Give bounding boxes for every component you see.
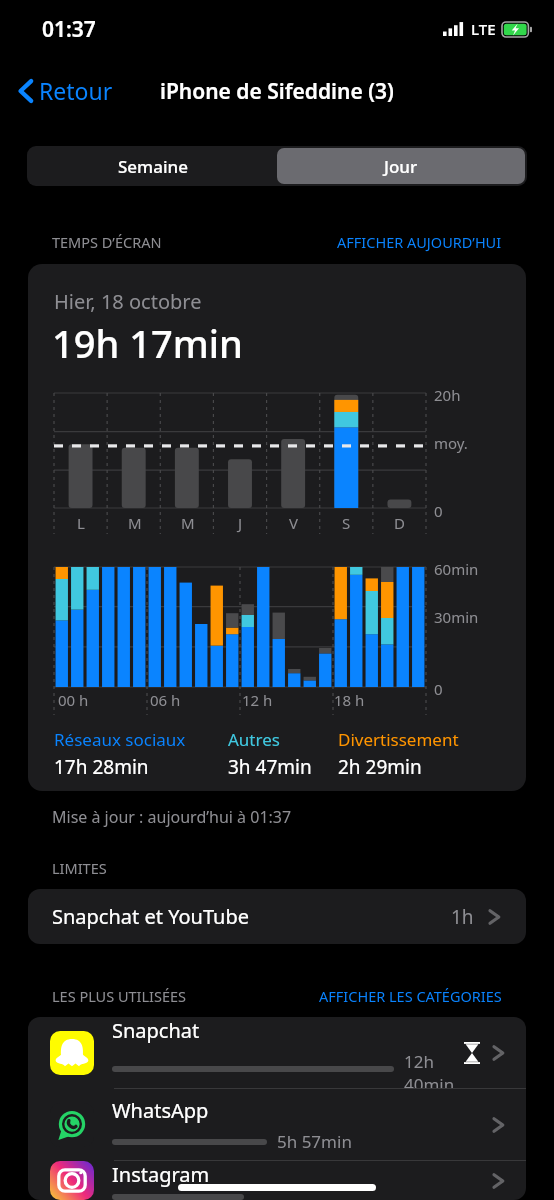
- staticText: 19h 17min: [52, 317, 243, 369]
- staticText: 06 h: [150, 690, 181, 710]
- staticText: Retour: [39, 75, 113, 106]
- staticText: Snapchat et YouTube: [52, 903, 249, 930]
- staticText: 5h 57min: [277, 1130, 352, 1153]
- staticText: 00 h: [58, 690, 89, 710]
- staticText: D: [394, 513, 405, 533]
- button[interactable]: Snapchat: [28, 1017, 526, 1088]
- staticText: 30min: [434, 607, 496, 627]
- staticText: moy.: [434, 433, 496, 453]
- staticText: M: [128, 513, 142, 533]
- button[interactable]: Jour: [277, 148, 525, 184]
- staticText: Instagram: [112, 1161, 210, 1188]
- staticText: 12 h: [242, 690, 273, 710]
- staticText: 17h 28min: [54, 754, 149, 780]
- button[interactable]: Divertissement: [338, 728, 506, 780]
- staticText: L: [77, 513, 85, 533]
- staticText: LIMITES: [52, 858, 107, 878]
- staticText: J: [238, 513, 243, 533]
- other: Limite atteinte: [464, 1042, 480, 1064]
- staticText: Divertissement: [338, 728, 459, 751]
- staticText: 1h: [451, 904, 474, 930]
- staticText: V: [289, 513, 299, 533]
- staticText: 12h 40min: [404, 1050, 464, 1088]
- staticText: S: [342, 513, 351, 533]
- staticText: 18 h: [334, 690, 365, 710]
- button[interactable]: Semaine: [29, 148, 277, 184]
- button[interactable]: Snapchat et YouTube: [28, 889, 526, 944]
- button[interactable]: Hier, 18 octobre: [28, 264, 526, 791]
- staticText: iPhone de Sifeddine (3): [160, 77, 394, 106]
- staticText: 60min: [434, 559, 496, 579]
- staticText: M: [181, 513, 195, 533]
- staticText: Hier, 18 octobre: [54, 288, 202, 315]
- staticText: LTE: [471, 19, 496, 39]
- button[interactable]: AFFICHER AUJOURD’HUI: [337, 232, 502, 252]
- staticText: Autres: [228, 728, 280, 751]
- staticText: 0: [434, 679, 496, 699]
- button[interactable]: Autres: [228, 728, 338, 780]
- staticText: Semaine: [118, 155, 188, 178]
- staticText: 0: [434, 501, 496, 521]
- staticText: Snapchat: [112, 1017, 200, 1044]
- button[interactable]: AFFICHER LES CATÉGORIES: [319, 986, 502, 1006]
- staticText: TEMPS D’ÉCRAN: [52, 232, 162, 252]
- staticText: AFFICHER AUJOURD’HUI: [337, 232, 502, 252]
- staticText: 3h 47min: [228, 754, 312, 780]
- staticText: Réseaux sociaux: [54, 728, 186, 751]
- staticText: 2h 29min: [338, 754, 422, 780]
- staticText: Mise à jour : aujourd’hui à 01:37: [52, 806, 292, 828]
- staticText: LES PLUS UTILISÉES: [52, 986, 187, 1006]
- button[interactable]: Retour: [12, 71, 119, 110]
- staticText: 20h: [434, 385, 496, 405]
- staticText: AFFICHER LES CATÉGORIES: [319, 986, 502, 1006]
- staticText: Jour: [384, 155, 418, 178]
- button[interactable]: Réseaux sociaux: [54, 728, 228, 780]
- button[interactable]: Instagram: [28, 1161, 526, 1200]
- staticText: WhatsApp: [112, 1097, 209, 1124]
- button[interactable]: WhatsApp: [28, 1089, 526, 1160]
- staticText: 01:37: [42, 15, 96, 44]
